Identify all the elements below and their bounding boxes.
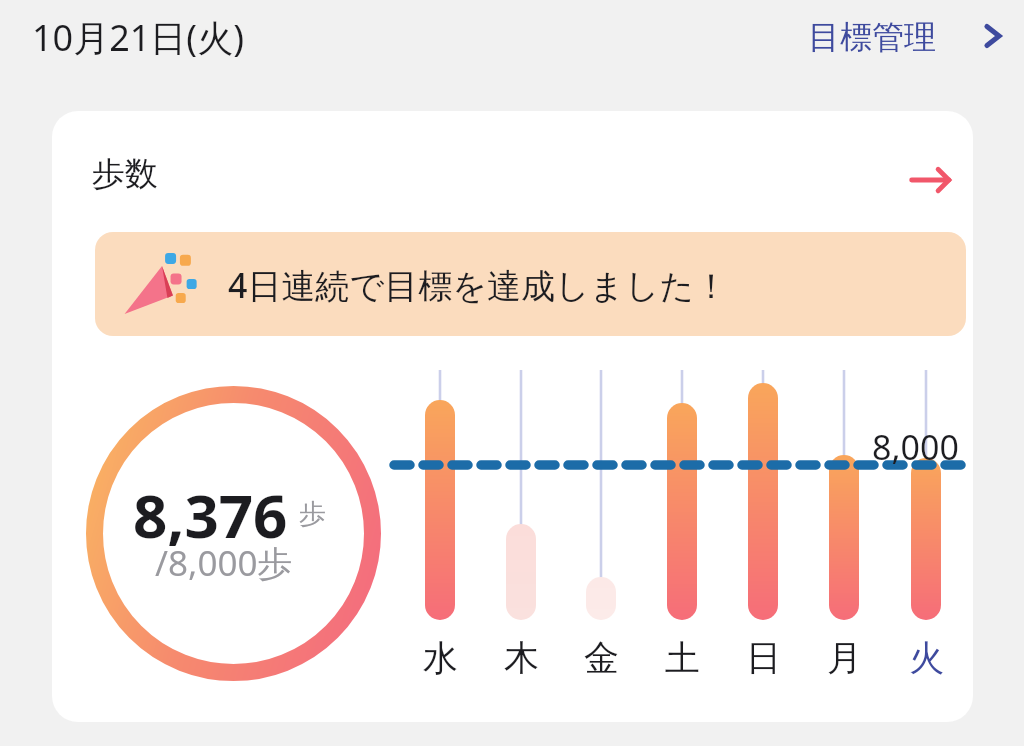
staticText: 歩 (299, 497, 326, 531)
staticText: /8,000歩 (155, 539, 293, 587)
staticText: 8,376 (133, 474, 288, 556)
button[interactable]: 木 (494, 631, 548, 685)
button[interactable]: 水 (413, 631, 467, 685)
staticText: 金 (584, 636, 619, 680)
staticText: 月 (827, 636, 862, 680)
button[interactable]: 火 (899, 631, 953, 685)
button[interactable]: 4日連続で目標を達成しました！ (95, 232, 966, 336)
staticText: 土 (665, 636, 700, 680)
button[interactable]: 歩数の進捗リング (86, 386, 381, 681)
button[interactable]: 目標管理 (808, 8, 1012, 64)
staticText: 4日連続で目標を達成しました！ (228, 262, 729, 308)
staticText: 日 (746, 636, 781, 680)
button[interactable]: 月 (817, 631, 871, 685)
staticText: 10月21日(火) (32, 13, 244, 62)
staticText: 目標管理 (808, 17, 936, 57)
button[interactable]: 金 (574, 631, 628, 685)
staticText: 8,000 (872, 424, 959, 470)
staticText: 歩数 (92, 153, 158, 195)
staticText: 木 (504, 636, 539, 680)
other: 目標管理 (974, 17, 1012, 55)
button[interactable]: 日 (736, 631, 790, 685)
button[interactable]: 歩数の詳細へ (903, 153, 957, 207)
button[interactable]: 土 (655, 631, 709, 685)
staticText: 火 (909, 636, 944, 680)
staticText: 水 (423, 636, 458, 680)
